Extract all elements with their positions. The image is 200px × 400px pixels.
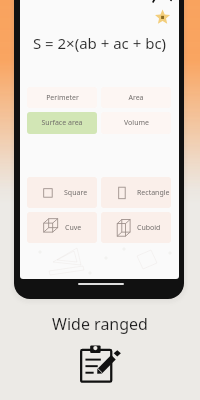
button[interactable]: Cuve [27,212,97,243]
button[interactable]: Rectangle [101,177,171,208]
staticText: Wide ranged [52,313,148,335]
staticText: Area [128,93,144,103]
button[interactable]: Volume [101,112,171,134]
button[interactable]: Square [27,177,97,208]
button[interactable]: Surface area [27,112,97,134]
staticText: Volume [124,118,149,128]
other: Wide ranged [79,342,122,385]
staticText: Square [64,188,88,198]
staticText: Cuboid [137,223,161,233]
staticText: S = 2×(ab + ac + bc) [20,33,179,53]
staticText: Rectangle [137,188,170,198]
staticText: Surface area [41,118,83,128]
staticText: Perimeter [46,93,79,103]
staticText: Cuve [65,223,82,233]
button[interactable]: Perimeter [27,87,97,108]
button[interactable]: Cuboid [101,212,171,243]
button[interactable]: Area [101,87,171,108]
